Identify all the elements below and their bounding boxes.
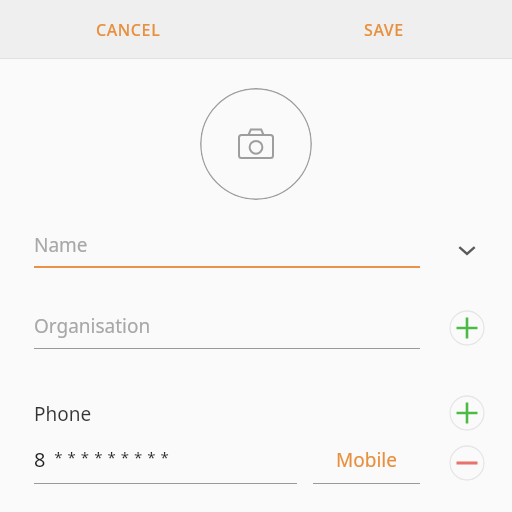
staticText: Name xyxy=(34,232,88,258)
staticText: 8 ********* xyxy=(34,446,174,473)
button[interactable]: Add contact photo xyxy=(200,88,312,200)
button[interactable]: Add organisation xyxy=(449,310,485,346)
button[interactable]: Organisation xyxy=(34,303,420,349)
staticText: Organisation xyxy=(34,313,151,339)
button[interactable]: Expand name fields xyxy=(443,226,491,274)
button[interactable]: 8 ********* xyxy=(34,443,297,485)
button[interactable]: CANCEL xyxy=(68,8,188,52)
staticText: SAVE xyxy=(364,19,404,41)
staticText: CANCEL xyxy=(96,19,161,41)
button[interactable]: Phone xyxy=(34,396,234,432)
button[interactable]: Name xyxy=(34,222,420,268)
button[interactable]: Remove phone number xyxy=(449,445,485,481)
button[interactable]: SAVE xyxy=(334,8,434,52)
staticText: Phone xyxy=(34,401,92,427)
staticText: Mobile xyxy=(336,447,397,473)
button[interactable]: Mobile xyxy=(313,443,420,485)
button[interactable]: Add phone number xyxy=(449,395,485,431)
